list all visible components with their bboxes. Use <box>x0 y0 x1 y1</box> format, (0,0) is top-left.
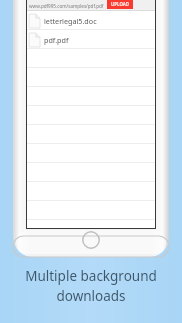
button[interactable]: UPLOAD <box>107 0 133 9</box>
staticText: UPLOAD <box>111 1 130 7</box>
staticText: www.pdf995.com/samples/pdf.pdf <box>29 3 104 9</box>
staticText: downloads <box>56 287 126 305</box>
staticText: pdf.pdf <box>44 35 69 45</box>
button[interactable]: www.pdf995.com/samples/pdf.pdf <box>27 0 155 10</box>
button[interactable]: pdf.pdf <box>27 30 155 49</box>
button[interactable]: letterlegal5.doc <box>27 11 155 30</box>
staticText: letterlegal5.doc <box>44 16 97 26</box>
staticText: Multiple background <box>25 267 157 285</box>
button[interactable]: Home <box>82 231 100 249</box>
